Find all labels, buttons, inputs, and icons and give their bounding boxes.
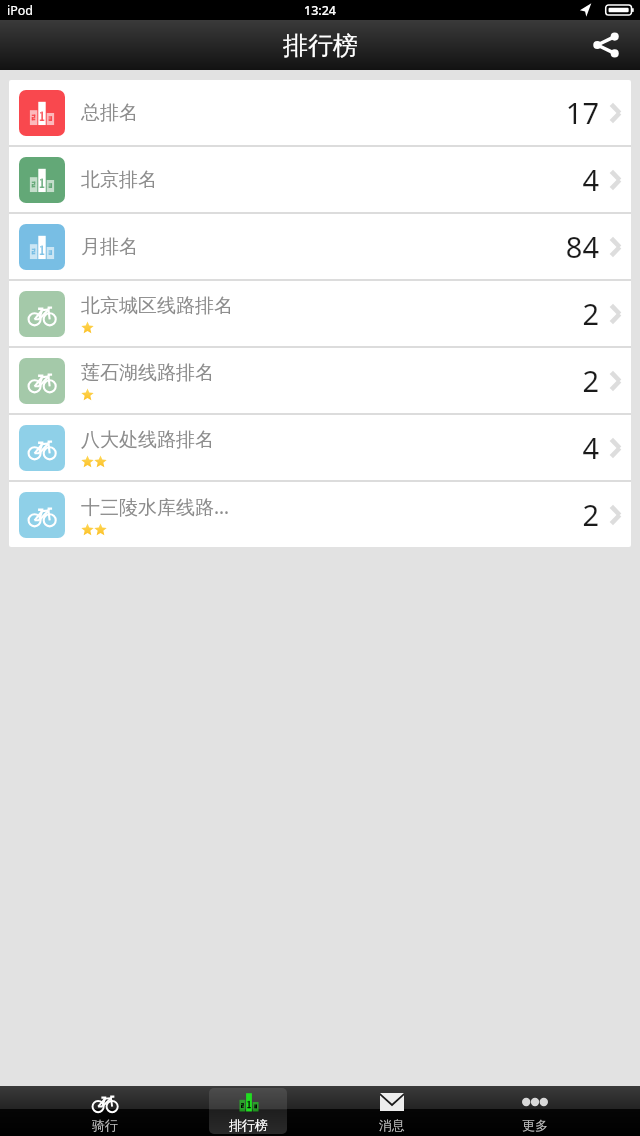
button[interactable]: 骑行	[66, 1088, 144, 1134]
staticText: 4	[541, 160, 599, 199]
staticText: 十三陵水库线路…	[81, 494, 230, 520]
staticText: 2	[541, 294, 599, 333]
staticText: 84	[541, 227, 599, 266]
button[interactable]: 总排名	[9, 80, 631, 145]
button[interactable]: 北京排名	[9, 147, 631, 212]
staticText: 2	[541, 361, 599, 400]
button[interactable]: 更多	[496, 1088, 574, 1134]
staticText: 月排名	[81, 235, 138, 259]
button[interactable]: 月排名	[9, 214, 631, 279]
staticText: 排行榜	[283, 30, 358, 61]
button[interactable]: 排行榜	[209, 1088, 287, 1134]
staticText: 总排名	[81, 101, 138, 125]
staticText: 消息	[379, 1117, 405, 1133]
button[interactable]: 十三陵水库线路…	[9, 482, 631, 547]
button[interactable]: 八大处线路排名	[9, 415, 631, 480]
staticText: 北京城区线路排名	[81, 294, 233, 318]
staticText: 4	[541, 428, 599, 467]
button[interactable]: 消息	[353, 1088, 431, 1134]
staticText: 2	[541, 495, 599, 534]
staticText: 17	[541, 93, 599, 132]
staticText: iPod	[7, 2, 34, 19]
staticText: 八大处线路排名	[81, 428, 214, 452]
button[interactable]: 北京城区线路排名	[9, 281, 631, 346]
button[interactable]: Share	[582, 21, 630, 69]
button[interactable]: 莲石湖线路排名	[9, 348, 631, 413]
staticText: 排行榜	[229, 1117, 268, 1133]
staticText: 更多	[522, 1117, 548, 1133]
staticText: 莲石湖线路排名	[81, 361, 214, 385]
staticText: 骑行	[92, 1117, 118, 1133]
staticText: 北京排名	[81, 168, 157, 192]
staticText: 13:24	[304, 2, 337, 19]
